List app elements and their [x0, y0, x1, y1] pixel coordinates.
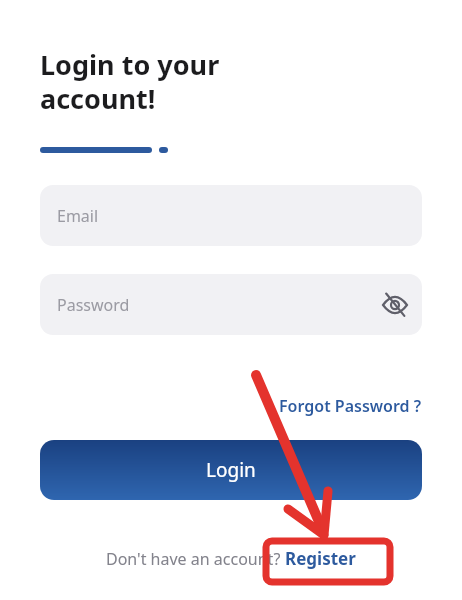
button[interactable]: Password — [40, 274, 422, 335]
button[interactable]: Email — [40, 185, 422, 246]
staticText: Password — [57, 294, 130, 316]
staticText: Don't have an account? — [106, 548, 285, 570]
button[interactable] — [382, 292, 408, 318]
button[interactable]: Login — [40, 440, 422, 500]
button[interactable]: Register — [285, 547, 356, 570]
staticText: Email — [57, 205, 99, 227]
button[interactable]: Forgot Password ? — [279, 395, 422, 417]
staticText: Login to your account! — [40, 46, 220, 117]
staticText: Login — [206, 457, 256, 483]
